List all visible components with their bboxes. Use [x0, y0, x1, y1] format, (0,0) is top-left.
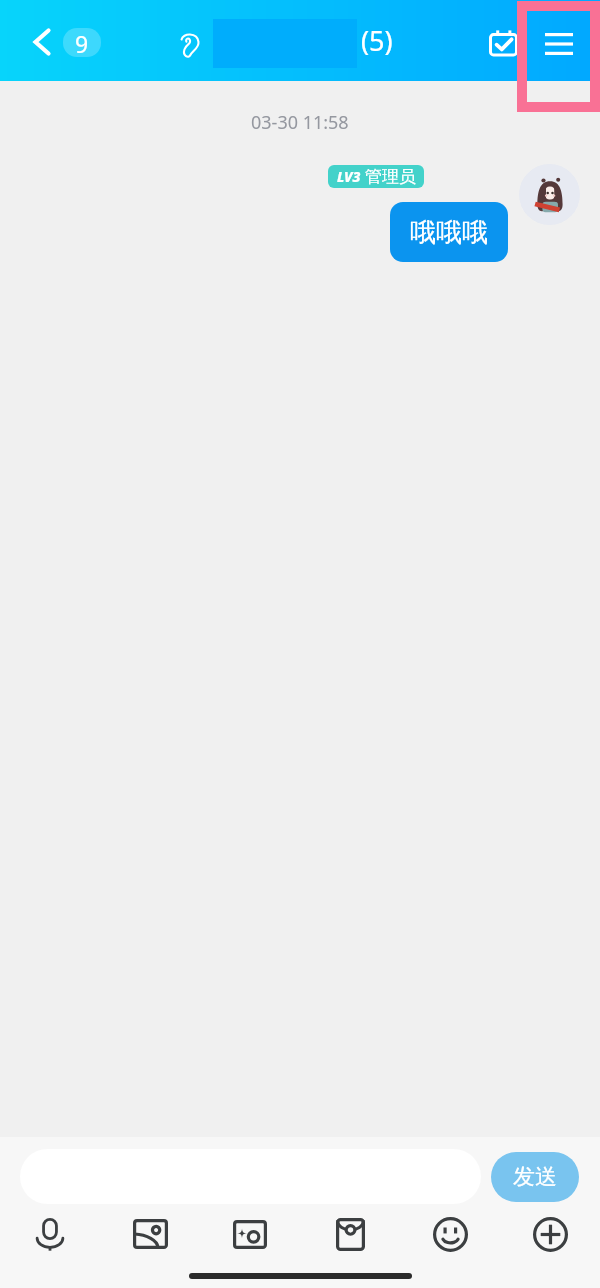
button[interactable]: Schedule [485, 25, 521, 61]
staticText: 03-30 11:58 [251, 110, 349, 135]
button[interactable]: Emoji [400, 1204, 500, 1264]
button[interactable]: Menu [527, 11, 590, 77]
staticText: (5) [361, 22, 393, 59]
button[interactable]: 哦哦哦 [390, 202, 508, 262]
staticText: 管理员 [365, 166, 416, 187]
button[interactable]: More [500, 1204, 600, 1264]
button[interactable]: Avatar [519, 164, 580, 225]
staticText: 哦哦哦 [410, 216, 488, 249]
button[interactable]: Listen [174, 28, 206, 60]
button[interactable]: Photo [100, 1204, 200, 1264]
button[interactable]: Red packet [300, 1204, 400, 1264]
staticText: 发送 [513, 1163, 557, 1191]
button[interactable]: Sticker [200, 1204, 300, 1264]
button[interactable]: Voice message [0, 1204, 100, 1264]
staticText: 9 [75, 28, 89, 57]
button[interactable]: Back [24, 22, 60, 62]
button[interactable]: 9 [63, 28, 101, 57]
button[interactable]: 发送 [491, 1152, 579, 1202]
staticText: LV3 [337, 167, 361, 186]
